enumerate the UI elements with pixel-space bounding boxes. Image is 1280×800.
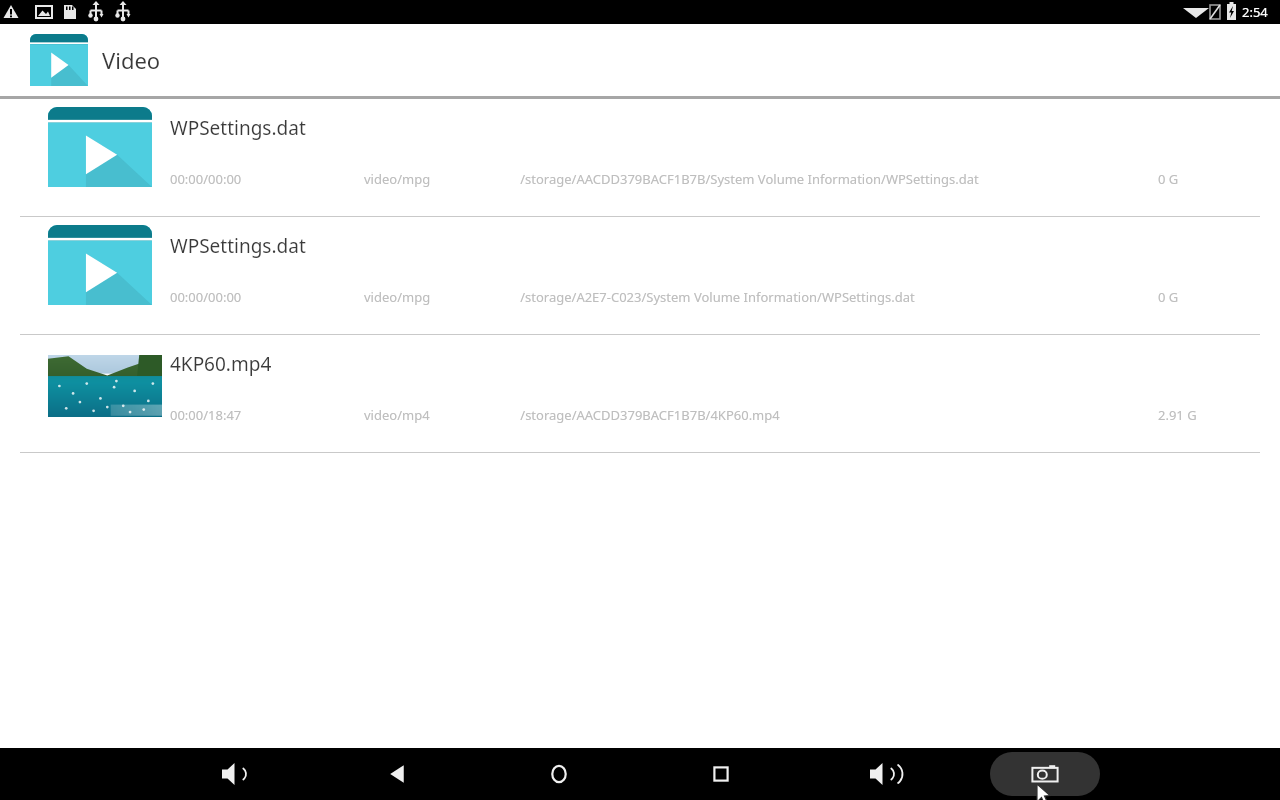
button[interactable]: Recent apps [686, 748, 756, 800]
staticText: 00:00/00:00 [170, 170, 242, 188]
staticText: video/mpg [364, 170, 431, 188]
button[interactable]: Volume up [848, 748, 918, 800]
staticText: /storage/AACDD379BACF1B7B/System Volume … [520, 170, 979, 188]
button[interactable]: Home [524, 748, 594, 800]
staticText: 0 G [1158, 288, 1179, 306]
staticText: WPSettings.dat [170, 233, 306, 259]
staticText: WPSettings.dat [170, 115, 306, 141]
staticText: /storage/A2E7-C023/System Volume Informa… [520, 288, 915, 306]
staticText: Video [102, 45, 161, 75]
staticText: 00:00/18:47 [170, 406, 242, 424]
button[interactable]: WPSettings.dat [0, 217, 1280, 335]
button[interactable]: Screenshot [990, 752, 1100, 796]
button[interactable]: Back [363, 748, 433, 800]
button[interactable]: WPSettings.dat [0, 99, 1280, 217]
button[interactable]: Volume down [200, 748, 270, 800]
button[interactable]: 4KP60.mp4 [0, 335, 1280, 453]
staticText: /storage/AACDD379BACF1B7B/4KP60.mp4 [520, 406, 780, 424]
staticText: 00:00/00:00 [170, 288, 242, 306]
staticText: video/mp4 [364, 406, 430, 424]
staticText: 4KP60.mp4 [170, 351, 272, 377]
staticText: 2.91 G [1158, 406, 1197, 424]
staticText: 0 G [1158, 170, 1179, 188]
staticText: video/mpg [364, 288, 431, 306]
staticText: 2:54 [1242, 3, 1268, 21]
